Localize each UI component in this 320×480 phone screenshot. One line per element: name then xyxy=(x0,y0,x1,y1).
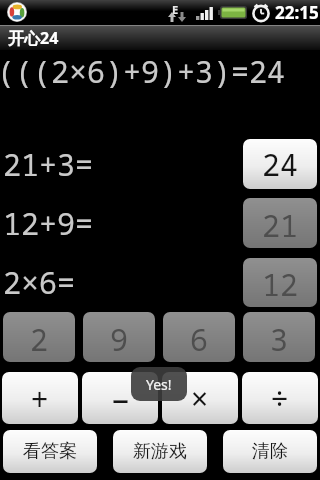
button[interactable]: ÷ xyxy=(242,372,318,424)
staticText: Yes! xyxy=(146,375,172,394)
button[interactable]: 新游戏 xyxy=(113,430,207,473)
button[interactable]: + xyxy=(2,372,78,424)
staticText: – xyxy=(112,375,129,421)
button[interactable]: 24 xyxy=(243,139,317,189)
staticText: 21+3= xyxy=(3,144,93,185)
staticText: × xyxy=(191,378,209,419)
staticText: + xyxy=(31,378,49,419)
staticText: 22:15 xyxy=(275,1,319,24)
button[interactable]: × xyxy=(162,372,238,424)
button[interactable]: 清除 xyxy=(223,430,317,473)
staticText: ÷ xyxy=(271,378,289,419)
staticText: 12 xyxy=(262,264,298,305)
button[interactable]: 21 xyxy=(243,198,317,248)
button[interactable]: 9 xyxy=(83,312,155,362)
staticText: 21 xyxy=(262,205,298,246)
staticText: 12+9= xyxy=(3,203,93,244)
staticText: 2×6= xyxy=(3,262,75,303)
staticText: 3 xyxy=(270,319,288,360)
button[interactable]: 2 xyxy=(3,312,75,362)
button[interactable]: 看答案 xyxy=(3,430,97,473)
staticText: E xyxy=(172,2,179,17)
button[interactable]: 6 xyxy=(163,312,235,362)
staticText: 看答案 xyxy=(23,440,77,463)
staticText: 开心24 xyxy=(8,27,59,49)
staticText: 9 xyxy=(110,319,128,360)
button[interactable]: 12 xyxy=(243,258,317,307)
staticText: 清除 xyxy=(252,440,288,463)
staticText: 24 xyxy=(262,144,298,185)
staticText: 6 xyxy=(190,319,208,360)
button[interactable]: 3 xyxy=(243,312,315,362)
staticText: 2 xyxy=(30,319,48,360)
staticText: (((2×6)+9)+3)=24 xyxy=(0,51,285,92)
staticText: 新游戏 xyxy=(133,440,187,463)
button[interactable]: – xyxy=(82,372,158,424)
